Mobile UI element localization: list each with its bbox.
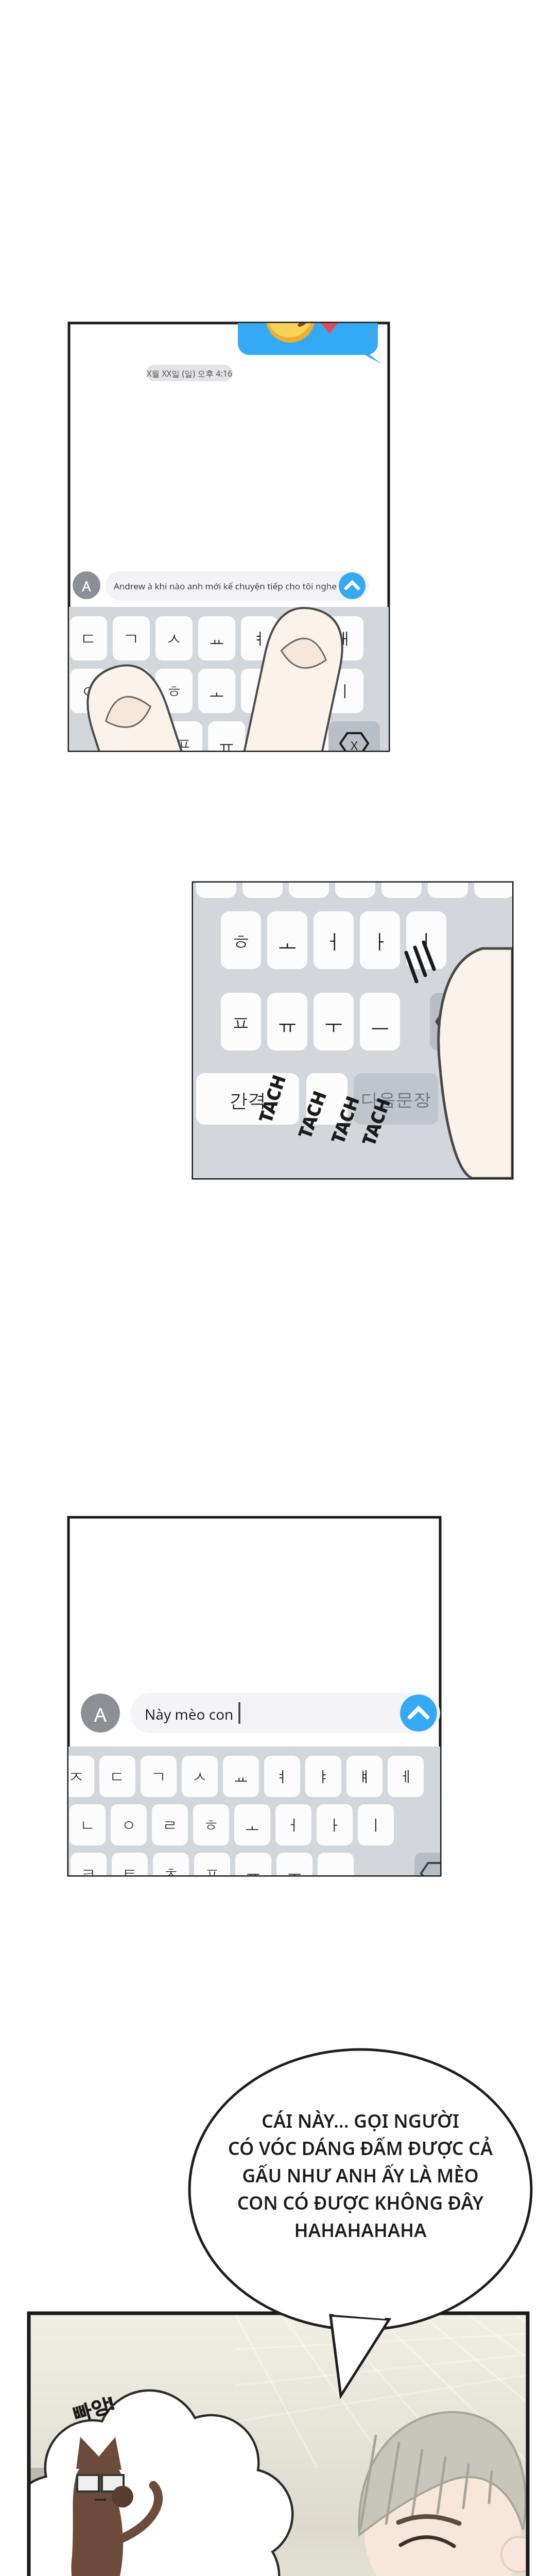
button[interactable]: Webtoon comic page (0, 0, 556, 2576)
